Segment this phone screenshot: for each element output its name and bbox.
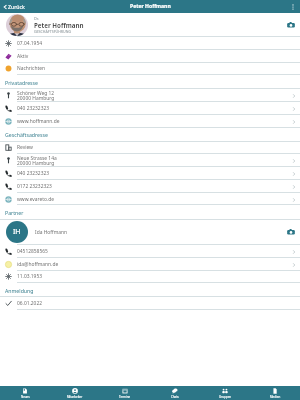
button[interactable]: Chats [150, 386, 200, 400]
staticText: Chats [171, 395, 179, 399]
button[interactable]: Neues [0, 386, 50, 400]
button[interactable]: Change photo [282, 13, 300, 37]
staticText: Partner [5, 209, 24, 216]
button[interactable]: www.evareto.de [0, 193, 300, 206]
button[interactable]: Termine [100, 386, 150, 400]
button[interactable]: 040 23232323 [0, 102, 300, 115]
staticText: Schöner Weg 12 20000 Hamburg [17, 90, 55, 102]
button[interactable]: More options [286, 0, 300, 13]
staticText: 04512858565 [17, 248, 48, 255]
staticText: Review [17, 144, 33, 151]
button[interactable]: Neue Strasse 14a 20000 Hamburg [0, 154, 300, 167]
staticText: Medien [270, 395, 281, 399]
button[interactable]: IH [0, 219, 300, 245]
button[interactable]: Nachrichten [0, 62, 300, 75]
staticText: 11.03.1953 [17, 273, 43, 280]
button[interactable]: 0172 23232323 [0, 180, 300, 193]
staticText: ida@hoffmann.de [17, 261, 59, 268]
staticText: Geschäftsadresse [5, 131, 48, 138]
button[interactable]: Mitarbeiter [50, 386, 100, 400]
staticText: 040 23232323 [17, 170, 50, 177]
staticText: GESCHÄFTSFÜHRUNG [34, 29, 72, 34]
button[interactable]: Medien [250, 386, 300, 400]
button[interactable]: Aktiv [0, 50, 300, 63]
button[interactable]: 07.04.1954 [0, 37, 300, 50]
staticText: Neue Strasse 14a 20000 Hamburg [17, 155, 57, 167]
staticText: Dr. [34, 16, 39, 21]
button[interactable]: 04512858565 [0, 245, 300, 258]
staticText: Gruppen [219, 395, 232, 399]
button[interactable]: www.hoffmann.de [0, 115, 300, 128]
staticText: IH [13, 227, 21, 237]
button[interactable]: Review [0, 141, 300, 154]
staticText: Zurück [8, 3, 25, 10]
button[interactable]: Anmeldung [0, 283, 300, 297]
staticText: Neues [21, 395, 30, 399]
button[interactable]: Change photo [282, 219, 300, 245]
staticText: Aktiv [17, 53, 29, 60]
staticText: Nachrichten [17, 65, 46, 72]
staticText: www.evareto.de [17, 196, 55, 203]
staticText: Mitarbeiter [67, 395, 83, 399]
button[interactable]: Dr. [0, 13, 300, 37]
staticText: Ida Hoffmann [35, 229, 67, 236]
staticText: Peter Hoffmann [34, 21, 84, 29]
staticText: Anmeldung [5, 287, 34, 294]
staticText: Peter Hoffmann [130, 3, 171, 10]
button[interactable]: 040 23232323 [0, 167, 300, 180]
staticText: 07.04.1954 [17, 40, 43, 47]
staticText: 0172 23232323 [17, 183, 52, 190]
button[interactable]: 11.03.1953 [0, 270, 300, 283]
button[interactable]: Gruppen [200, 386, 250, 400]
button[interactable]: Zurück [0, 0, 28, 13]
staticText: Termine [119, 395, 131, 399]
staticText: 06.01.2022 [17, 300, 43, 307]
button[interactable]: 06.01.2022 [0, 297, 300, 310]
staticText: 040 23232323 [17, 105, 50, 112]
button[interactable]: Geschäftsadresse [0, 127, 300, 141]
button[interactable]: Privatadresse [0, 75, 300, 89]
staticText: www.hoffmann.de [17, 118, 60, 125]
staticText: Privatadresse [5, 79, 38, 86]
button[interactable]: Schöner Weg 12 20000 Hamburg [0, 89, 300, 102]
button[interactable]: ida@hoffmann.de [0, 258, 300, 271]
button[interactable]: Partner [0, 205, 300, 219]
